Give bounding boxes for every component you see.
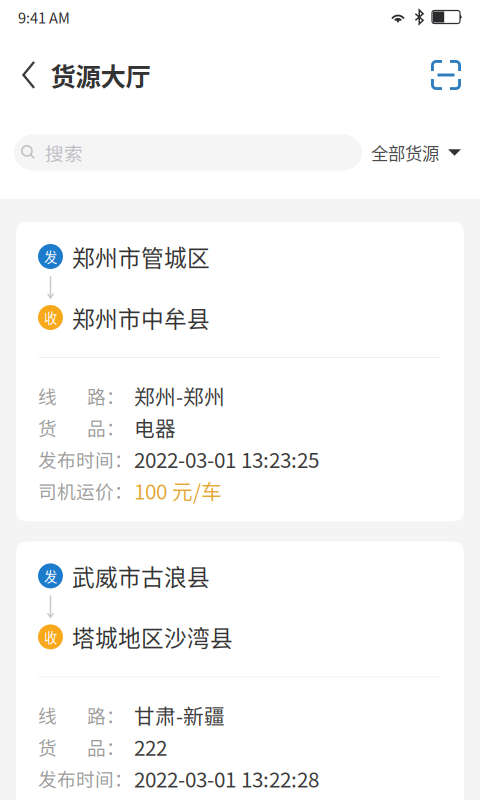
- staticText: 品: [87, 733, 106, 760]
- staticText: 武威市古浪县: [72, 559, 210, 592]
- staticText: 郑州市管城区: [72, 240, 210, 273]
- staticText: ：: [106, 702, 125, 729]
- staticText: 222: [134, 732, 167, 762]
- staticText: 线: [38, 702, 57, 729]
- staticText: 发布时间: [38, 765, 114, 792]
- staticText: ：: [114, 445, 133, 472]
- button[interactable]: 发: [16, 541, 464, 800]
- button[interactable]: 货源大厅: [0, 39, 162, 111]
- button[interactable]: 全部货源: [362, 134, 480, 170]
- staticText: 郑州-郑州: [134, 381, 225, 411]
- staticText: 电器: [134, 412, 176, 442]
- staticText: 100 元/车: [134, 476, 222, 505]
- staticText: ：: [114, 765, 133, 792]
- staticText: 司机运价: [38, 477, 114, 504]
- staticText: ：: [114, 477, 133, 504]
- staticText: 2022-03-01 13:23:25: [134, 444, 319, 474]
- staticText: 路: [87, 382, 106, 409]
- staticText: ：: [106, 414, 125, 441]
- staticText: 塔城地区沙湾县: [72, 620, 233, 653]
- staticText: 货源大厅: [50, 57, 150, 93]
- staticText: 搜索: [45, 139, 83, 166]
- staticText: 收: [44, 308, 57, 327]
- staticText: ：: [106, 382, 125, 409]
- staticText: 收: [44, 627, 57, 646]
- staticText: 发布时间: [38, 445, 114, 472]
- button[interactable]: 搜索: [14, 134, 362, 170]
- staticText: 9:41 AM: [18, 6, 70, 28]
- staticText: 郑州市中牟县: [72, 301, 210, 334]
- staticText: 发: [44, 247, 57, 266]
- staticText: 路: [87, 702, 106, 729]
- staticText: 货: [38, 414, 57, 441]
- staticText: 品: [87, 414, 106, 441]
- button[interactable]: Scan: [415, 39, 480, 111]
- staticText: 发: [44, 566, 57, 585]
- staticText: 甘肃-新疆: [134, 700, 225, 730]
- staticText: 2022-03-01 13:22:28: [134, 763, 319, 793]
- staticText: 全部货源: [371, 140, 439, 165]
- button[interactable]: 发: [16, 222, 464, 521]
- staticText: ：: [106, 733, 125, 760]
- staticText: 货: [38, 733, 57, 760]
- staticText: 线: [38, 382, 57, 409]
